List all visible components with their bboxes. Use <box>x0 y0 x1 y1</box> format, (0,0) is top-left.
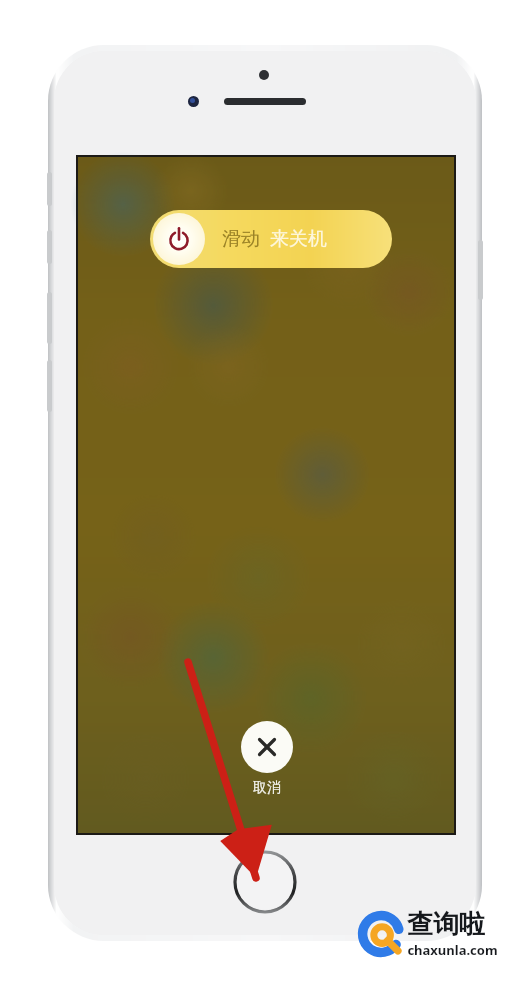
button[interactable]: Power <box>478 240 483 300</box>
button[interactable]: Slide to power off <box>150 210 392 268</box>
staticText: chaxunla.com <box>407 941 498 959</box>
button[interactable]: Side button 2 <box>47 292 52 344</box>
staticText: 查询啦 <box>407 908 485 941</box>
staticText: 来关机 <box>270 227 327 251</box>
button[interactable]: Side button 3 <box>47 360 52 412</box>
button[interactable]: Side button 0 <box>47 172 52 206</box>
button[interactable]: Cancel <box>241 721 293 797</box>
button[interactable]: Side button 1 <box>47 230 52 264</box>
staticText: 滑动 <box>222 227 260 251</box>
button[interactable]: Home <box>233 850 297 914</box>
staticText: 取消 <box>253 779 281 797</box>
